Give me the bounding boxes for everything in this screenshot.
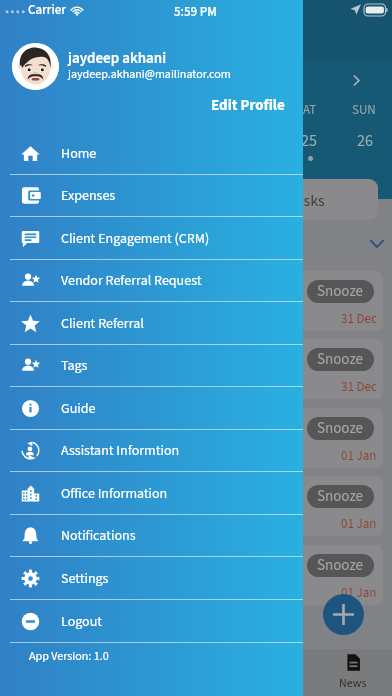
button[interactable]: Snooze	[150, 339, 383, 399]
button[interactable]: News	[314, 649, 392, 696]
staticText: Assistant Informtion	[61, 441, 180, 461]
staticText: Snooze	[317, 555, 364, 576]
staticText: Client Referral	[61, 314, 144, 334]
button[interactable]: News	[79, 649, 158, 696]
button[interactable]: Snooze	[150, 476, 383, 536]
button[interactable]: Guide	[0, 387, 303, 430]
button[interactable]: Tasks	[130, 179, 378, 220]
button[interactable]: News	[158, 649, 236, 696]
staticText: Expenses	[61, 186, 116, 206]
button[interactable]: Tags	[0, 344, 303, 387]
staticText: jaydeep akhani	[68, 48, 167, 69]
staticText: 25	[301, 130, 317, 153]
button[interactable]: Snooze	[150, 271, 383, 331]
staticText: App Version: 1.0	[29, 648, 109, 665]
button[interactable]: Snooze	[150, 545, 383, 605]
staticText: Logout	[61, 612, 103, 632]
button[interactable]: Snooze	[307, 485, 374, 508]
staticText: 5:59 PM	[174, 3, 217, 22]
button[interactable]: Settings	[0, 557, 303, 600]
staticText: jaydeep.akhani@mailinator.com	[68, 66, 231, 83]
staticText: 01 Jan	[341, 515, 377, 534]
staticText: Vendor Referral Request	[61, 271, 202, 291]
staticText: Guide	[61, 399, 96, 419]
staticText: SUN	[352, 101, 376, 120]
staticText: Home	[61, 144, 97, 164]
staticText: Carrier	[28, 1, 66, 20]
button[interactable]: Snooze	[307, 554, 374, 577]
button[interactable]: News	[0, 649, 79, 696]
staticText: Client Engagement (CRM)	[61, 229, 210, 249]
staticText: Snooze	[317, 418, 364, 439]
button[interactable]: Snooze	[307, 348, 374, 371]
button[interactable]: Expenses	[0, 174, 303, 217]
button[interactable]: Assistant Informtion	[0, 429, 303, 472]
staticText: Snooze	[317, 349, 364, 370]
staticText: SAT	[296, 101, 317, 120]
staticText: Settings	[61, 569, 109, 589]
staticText: 01 Jan	[341, 584, 377, 603]
button[interactable]: Home	[0, 132, 303, 175]
staticText: 26	[357, 130, 373, 153]
staticText: 01 Jan	[341, 447, 377, 466]
button[interactable]: Office Information	[0, 472, 303, 515]
staticText: Snooze	[317, 486, 364, 507]
button[interactable]: Snooze	[150, 408, 383, 468]
staticText: News	[339, 675, 367, 692]
button[interactable]: Add	[323, 594, 364, 635]
staticText: Notifications	[61, 526, 136, 546]
button[interactable]: Client Referral	[0, 302, 303, 345]
button[interactable]: Snooze	[307, 417, 374, 440]
staticText: Edit Profile	[211, 95, 285, 116]
staticText: 31 Dec	[341, 310, 377, 329]
staticText: Snooze	[317, 281, 364, 302]
button[interactable]: Snooze	[307, 280, 374, 303]
staticText: Office Information	[61, 484, 168, 504]
button[interactable]: Notifications	[0, 514, 303, 557]
staticText: Tasks	[288, 190, 325, 213]
button[interactable]: Logout	[0, 600, 303, 643]
button[interactable]: Client Engagement (CRM)	[0, 217, 303, 260]
staticText: Tags	[61, 356, 88, 376]
button[interactable]: Edit Profile	[205, 92, 291, 119]
button[interactable]: Vendor Referral Request	[0, 259, 303, 302]
staticText: 31 Dec	[341, 378, 377, 397]
button[interactable]: News	[236, 649, 314, 696]
